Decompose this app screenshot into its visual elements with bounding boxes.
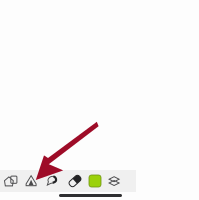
button[interactable]: Eraser: [65, 170, 85, 192]
button[interactable]: Marker: [42, 170, 62, 192]
button[interactable]: Colour: [85, 170, 105, 192]
button[interactable]: Pen: [21, 170, 41, 192]
button[interactable]: Layers: [104, 170, 124, 192]
button[interactable]: Shapes: [1, 170, 21, 192]
